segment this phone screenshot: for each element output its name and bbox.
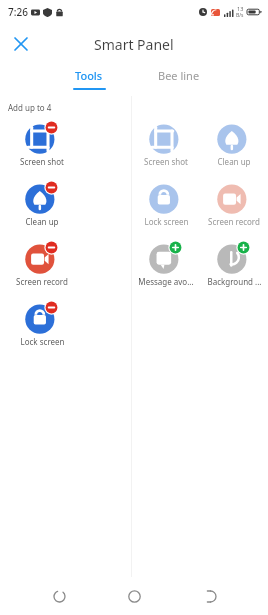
staticText: 7:26: [8, 5, 28, 19]
other: Screen shot: [24, 119, 60, 155]
button[interactable]: Screen shot: [133, 116, 199, 170]
staticText: Bee line: [158, 68, 200, 83]
staticText: Add up to 4: [8, 102, 52, 113]
button[interactable]: Recents: [42, 579, 76, 613]
button[interactable]: Screen record: [4, 236, 80, 290]
button[interactable]: Tools: [54, 64, 124, 90]
staticText: Screen record: [16, 276, 68, 287]
button[interactable]: Message avo...: [133, 236, 199, 290]
staticText: Message avo...: [138, 276, 194, 287]
button[interactable]: Lock screen: [133, 176, 199, 230]
staticText: Screen record: [208, 216, 260, 227]
staticText: Smart Panel: [94, 35, 174, 54]
button[interactable]: Background ...: [201, 236, 267, 290]
staticText: B/s: [236, 12, 244, 19]
other: Message avo...: [148, 239, 184, 275]
staticText: Lock screen: [144, 216, 189, 227]
button[interactable]: Back: [193, 579, 227, 613]
button[interactable]: Screen shot: [4, 116, 80, 170]
staticText: Tools: [75, 68, 103, 83]
staticText: Screen shot: [20, 156, 64, 167]
other: Screen shot: [148, 119, 184, 155]
button[interactable]: Clean up: [4, 176, 80, 230]
staticText: Clean up: [217, 156, 251, 167]
other: Lock screen: [148, 179, 184, 215]
other: Clean up: [216, 119, 252, 155]
other: Lock screen: [24, 299, 60, 335]
staticText: Lock screen: [20, 336, 65, 347]
staticText: Screen shot: [144, 156, 188, 167]
other: Screen record: [216, 179, 252, 215]
staticText: Clean up: [25, 216, 59, 227]
button[interactable]: Screen record: [201, 176, 267, 230]
staticText: Background ...: [207, 276, 262, 287]
button[interactable]: Clean up: [201, 116, 267, 170]
other: Background ...: [216, 239, 252, 275]
other: Screen record: [24, 239, 60, 275]
button[interactable]: Bee line: [144, 64, 214, 83]
button[interactable]: Home: [117, 579, 151, 613]
other: Clean up: [24, 179, 60, 215]
button[interactable]: Lock screen: [4, 296, 80, 350]
button[interactable]: Close: [9, 32, 33, 56]
staticText: 13: [237, 5, 244, 12]
